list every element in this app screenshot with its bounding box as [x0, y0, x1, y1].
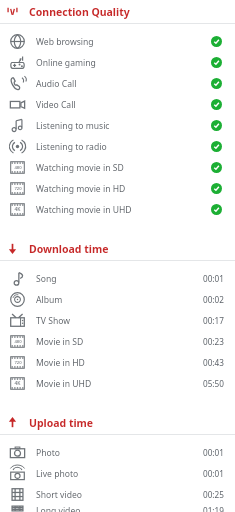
- staticText: 00:01: [203, 447, 224, 458]
- staticText: Upload time: [29, 416, 94, 430]
- button[interactable]: Album: [0, 289, 235, 310]
- staticText: Watching movie in UHD: [36, 204, 132, 216]
- button[interactable]: Listening to radio: [0, 136, 235, 157]
- staticText: 00:01: [203, 273, 224, 284]
- button[interactable]: Connection Quality: [0, 0, 235, 23]
- button[interactable]: Video Call: [0, 94, 235, 115]
- staticText: Video Call: [36, 99, 76, 111]
- staticText: Movie in UHD: [36, 378, 92, 390]
- staticText: 00:01: [203, 468, 224, 479]
- staticText: Song: [36, 273, 57, 285]
- button[interactable]: TV Show: [0, 310, 235, 331]
- staticText: Long video: [36, 505, 81, 512]
- button[interactable]: Online gaming: [0, 52, 235, 73]
- staticText: Online gaming: [36, 57, 96, 69]
- staticText: Download time: [29, 242, 109, 256]
- staticText: Photo: [36, 447, 61, 459]
- button[interactable]: Short video: [0, 484, 235, 505]
- button[interactable]: 4K: [0, 199, 235, 220]
- staticText: 00:25: [203, 489, 224, 500]
- staticText: TV Show: [36, 315, 70, 327]
- button[interactable]: Live photo: [0, 463, 235, 484]
- staticText: Audio Call: [36, 78, 77, 90]
- button[interactable]: 4K: [0, 373, 235, 394]
- button[interactable]: 5: [0, 505, 235, 512]
- staticText: Movie in HD: [36, 357, 85, 369]
- staticText: 480: [14, 165, 22, 171]
- staticText: 480: [14, 339, 22, 345]
- staticText: Web browsing: [36, 36, 94, 48]
- button[interactable]: Listening to music: [0, 115, 235, 136]
- staticText: 00:43: [203, 357, 224, 368]
- staticText: 05:50: [203, 378, 224, 389]
- staticText: 720: [14, 186, 22, 192]
- staticText: Movie in SD: [36, 336, 84, 348]
- button[interactable]: 480: [0, 331, 235, 352]
- staticText: 01:19: [203, 505, 224, 512]
- staticText: 00:17: [203, 315, 224, 326]
- staticText: Watching movie in SD: [36, 162, 124, 174]
- staticText: Connection Quality: [29, 5, 130, 19]
- button[interactable]: Photo: [0, 442, 235, 463]
- button[interactable]: Download time: [0, 237, 235, 260]
- staticText: 720: [14, 360, 22, 366]
- button[interactable]: 480: [0, 157, 235, 178]
- button[interactable]: Song: [0, 268, 235, 289]
- button[interactable]: Upload time: [0, 411, 235, 434]
- staticText: Listening to music: [36, 120, 110, 132]
- button[interactable]: 720: [0, 352, 235, 373]
- staticText: Album: [36, 294, 63, 306]
- button[interactable]: Web browsing: [0, 31, 235, 52]
- button[interactable]: 720: [0, 178, 235, 199]
- staticText: Live photo: [36, 468, 79, 480]
- staticText: Short video: [36, 489, 83, 501]
- staticText: Watching movie in HD: [36, 183, 126, 195]
- staticText: 5: [16, 505, 19, 512]
- button[interactable]: Audio Call: [0, 73, 235, 94]
- staticText: 4K: [14, 380, 21, 387]
- staticText: 00:23: [203, 336, 224, 347]
- staticText: Listening to radio: [36, 141, 107, 153]
- staticText: 4K: [14, 206, 21, 213]
- staticText: 00:02: [203, 294, 224, 305]
